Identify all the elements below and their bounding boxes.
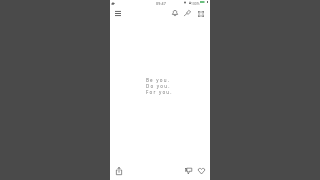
button[interactable]: Menu: [112, 7, 124, 19]
button[interactable]: Share: [113, 165, 125, 177]
staticText: For you.: [146, 89, 173, 95]
staticText: 100%: [191, 1, 200, 5]
button[interactable]: Notifications: [169, 7, 181, 19]
button[interactable]: Edit: [181, 7, 194, 19]
staticText: Be you.: [146, 77, 171, 83]
button[interactable]: Like: [195, 166, 208, 176]
button[interactable]: Dislike: [182, 166, 195, 176]
staticText: 09:47: [156, 1, 166, 6]
staticText: Do you.: [146, 83, 171, 89]
button[interactable]: Scan code: [195, 8, 207, 20]
